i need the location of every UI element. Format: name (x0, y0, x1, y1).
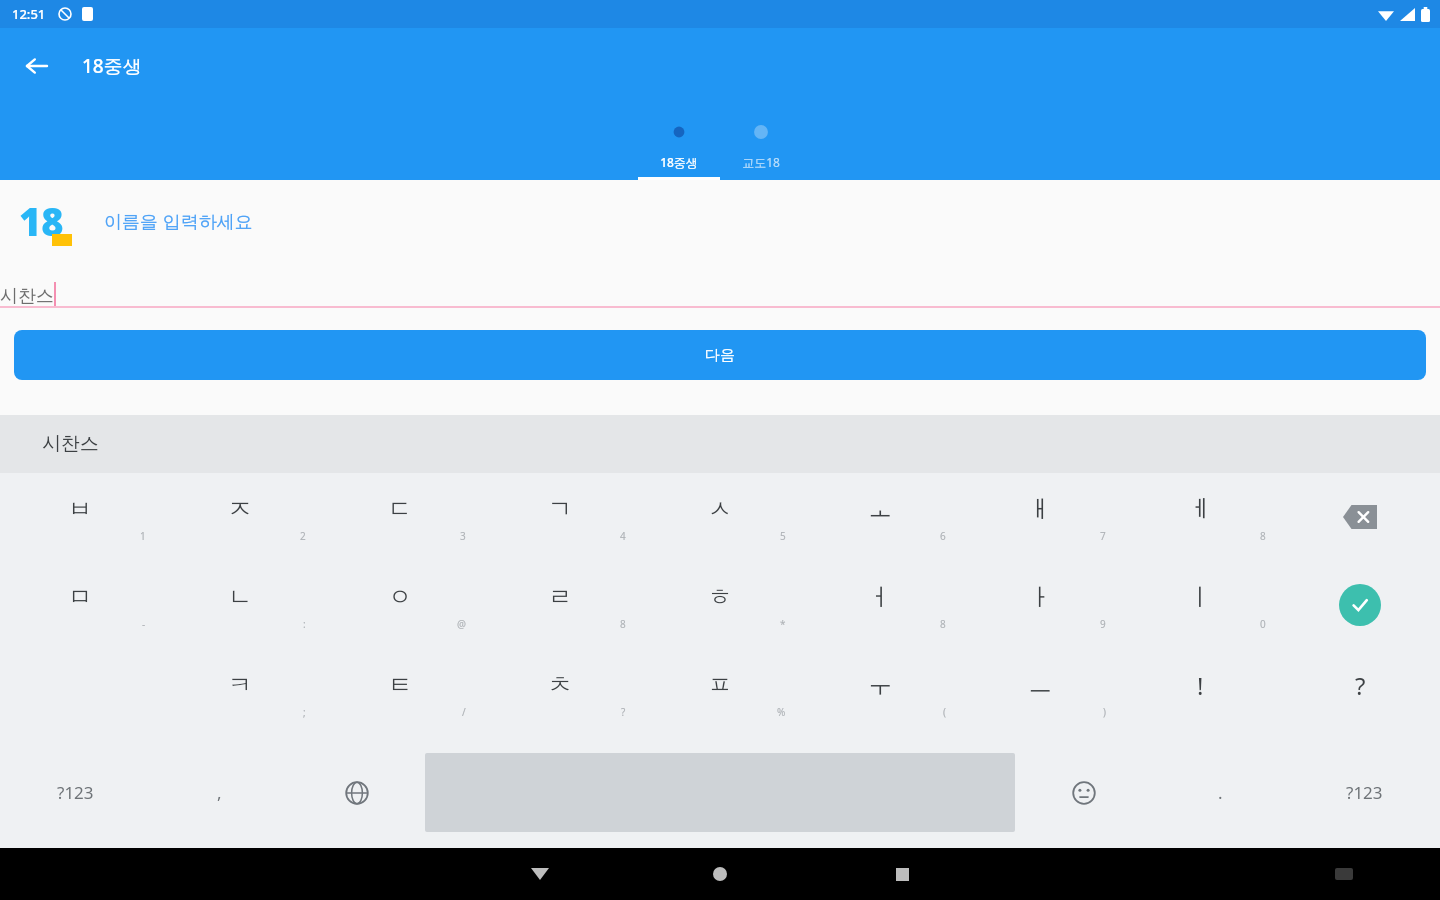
staticText: ?123 (1346, 781, 1383, 804)
staticText: ( (943, 705, 946, 719)
button[interactable]: ㄷ (320, 473, 480, 561)
button[interactable]: Hide keyboard (516, 850, 564, 898)
button[interactable]: Backspace (1280, 473, 1440, 561)
staticText: ㅈ (228, 494, 252, 524)
staticText: ! (1197, 669, 1204, 702)
staticText: ㅗ (868, 494, 892, 524)
staticText: , (217, 781, 222, 804)
staticText: 교도18 (742, 154, 780, 170)
staticText: ㅁ (68, 582, 92, 612)
button[interactable]: Enter (1280, 561, 1440, 649)
button[interactable]: ㅂ (0, 473, 160, 561)
staticText: : (303, 617, 306, 631)
staticText: ㅋ (228, 670, 252, 700)
button[interactable]: ㅡ (960, 649, 1120, 737)
staticText: ㅓ (868, 582, 892, 612)
button[interactable]: ㅇ (320, 561, 480, 649)
staticText: * (780, 617, 786, 631)
button[interactable]: Home (696, 850, 744, 898)
button[interactable]: ㅊ (480, 649, 640, 737)
button[interactable]: 다음 (14, 330, 1426, 380)
button[interactable]: ㅋ (160, 649, 320, 737)
staticText: ㅐ (1028, 494, 1052, 524)
staticText: / (462, 705, 466, 719)
staticText: ㅣ (1188, 582, 1212, 612)
button[interactable]: ?123 (0, 737, 151, 848)
staticText: 이름을 입력하세요 (104, 209, 253, 234)
button[interactable]: ㅓ (800, 561, 960, 649)
staticText: - (142, 617, 146, 631)
button[interactable]: Recents (878, 850, 926, 898)
staticText: ㄴ (228, 582, 252, 612)
button[interactable]: ? (1280, 649, 1440, 737)
button[interactable]: 교도18 (720, 104, 802, 180)
staticText: ㅊ (548, 670, 572, 700)
staticText: ㅍ (708, 670, 732, 700)
staticText: 7 (1100, 529, 1106, 543)
staticText: 1 (140, 529, 146, 543)
staticText: ; (303, 705, 306, 719)
staticText: 9 (1100, 617, 1106, 631)
button[interactable]: ㄱ (480, 473, 640, 561)
staticText: ㄷ (388, 494, 412, 524)
button[interactable]: ㅅ (640, 473, 800, 561)
staticText: 18중생 (660, 154, 698, 170)
staticText: ㅏ (1028, 582, 1052, 612)
staticText: ㅎ (708, 582, 732, 612)
button[interactable]: 18중생 (638, 104, 720, 180)
staticText: ㅇ (388, 582, 412, 612)
button[interactable]: Emoji (1015, 737, 1152, 848)
button[interactable]: 시찬스 (42, 432, 99, 456)
button[interactable]: ㅣ (1120, 561, 1280, 649)
staticText: 시찬스 (0, 285, 54, 308)
staticText: ) (1103, 705, 1106, 719)
button[interactable]: ㅏ (960, 561, 1120, 649)
staticText: 8 (940, 617, 946, 631)
button[interactable]: ㅗ (800, 473, 960, 561)
staticText: ㅂ (68, 494, 92, 524)
staticText: 8 (1260, 529, 1266, 543)
staticText: 2 (300, 529, 306, 543)
button[interactable]: Keyboard layout (1326, 856, 1362, 892)
button[interactable]: ㄹ (480, 561, 640, 649)
staticText: ㅅ (708, 494, 732, 524)
staticText: 4 (620, 529, 626, 543)
staticText: 3 (460, 529, 466, 543)
staticText: ? (1355, 669, 1366, 702)
button[interactable]: ㅁ (0, 561, 160, 649)
button[interactable]: Change language (288, 737, 425, 848)
staticText: ㅌ (388, 670, 412, 700)
staticText: 0 (1260, 617, 1266, 631)
button[interactable]: ㅍ (640, 649, 800, 737)
button[interactable]: ?123 (1289, 737, 1440, 848)
staticText: ㄹ (548, 582, 572, 612)
staticText: ?123 (57, 781, 94, 804)
staticText: ㅔ (1188, 494, 1212, 524)
button[interactable]: Back (14, 43, 60, 89)
staticText: @ (457, 617, 466, 631)
staticText: . (1218, 781, 1223, 804)
staticText: % (777, 705, 786, 719)
button[interactable]: ㅔ (1120, 473, 1280, 561)
staticText: 6 (940, 529, 946, 543)
button[interactable]: ㅜ (800, 649, 960, 737)
button[interactable]: ㅐ (960, 473, 1120, 561)
staticText: ㅜ (868, 670, 892, 700)
button[interactable]: ㅈ (160, 473, 320, 561)
button[interactable]: ㄴ (160, 561, 320, 649)
staticText: ? (621, 705, 626, 719)
button[interactable]: ㅌ (320, 649, 480, 737)
staticText: ㄱ (548, 494, 572, 524)
staticText: 18 (19, 195, 64, 247)
staticText: ㅡ (1028, 670, 1052, 700)
button[interactable]: ㅎ (640, 561, 800, 649)
staticText: 18중생 (82, 53, 142, 79)
staticText: 8 (620, 617, 626, 631)
button[interactable]: ! (1120, 649, 1280, 737)
staticText: 다음 (705, 346, 735, 365)
staticText: 12:51 (12, 5, 46, 23)
staticText: 5 (780, 529, 786, 543)
